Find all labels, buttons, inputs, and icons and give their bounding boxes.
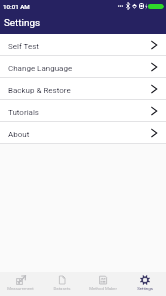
staticText: Settings: [4, 17, 41, 29]
button[interactable]: Tutorials: [0, 100, 166, 121]
button[interactable]: About: [0, 122, 166, 143]
staticText: Datasets: [53, 286, 71, 291]
staticText: Tutorials: [8, 108, 39, 117]
staticText: Change Language: [8, 64, 73, 73]
other: Datasets: [57, 275, 67, 285]
staticText: Measurement: [7, 286, 34, 291]
button[interactable]: Settings: [124, 272, 166, 291]
staticText: About: [8, 130, 30, 139]
button[interactable]: Measurement: [0, 272, 41, 291]
button[interactable]: Method Maker: [82, 272, 124, 291]
staticText: 10:01 AM: [3, 3, 30, 10]
button[interactable]: Backup & Restore: [0, 78, 166, 99]
button[interactable]: Self Test: [0, 34, 166, 55]
other: Measurement: [16, 275, 26, 285]
staticText: Self Test: [8, 42, 39, 51]
staticText: Backup & Restore: [8, 86, 71, 95]
other: Settings: [140, 275, 150, 285]
button[interactable]: Change Language: [0, 56, 166, 77]
staticText: Settings: [137, 286, 153, 291]
button[interactable]: Datasets: [41, 272, 82, 291]
staticText: Method Maker: [89, 286, 117, 291]
other: Method Maker: [98, 275, 108, 285]
